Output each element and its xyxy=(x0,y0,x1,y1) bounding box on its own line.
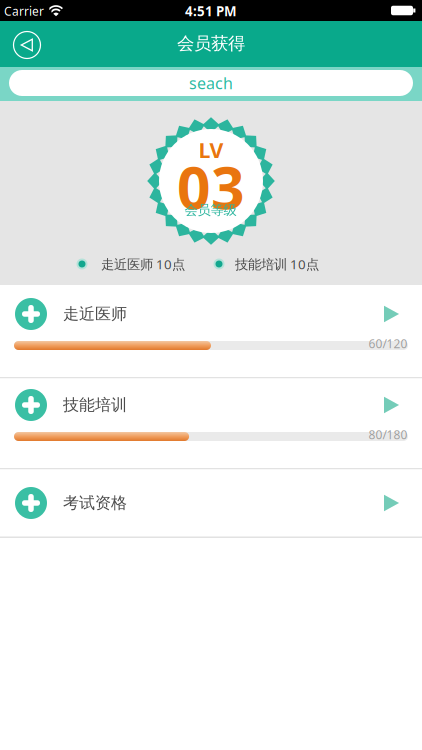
staticText: 03 xyxy=(177,147,245,225)
button[interactable]: 考试资格 xyxy=(0,469,422,536)
staticText: 技能培训 10点 xyxy=(235,255,319,273)
staticText: 考试资格 xyxy=(63,493,127,513)
button[interactable]: seach xyxy=(9,70,413,96)
staticText: 60/120 xyxy=(368,335,407,351)
button[interactable]: Back xyxy=(13,31,40,58)
staticText: 4:51 PM xyxy=(185,2,237,20)
staticText: 走近医师 xyxy=(63,304,127,324)
staticText: Carrier xyxy=(4,3,44,19)
staticText: LV xyxy=(198,136,223,164)
button[interactable]: 技能培训 xyxy=(0,378,422,468)
staticText: 80/180 xyxy=(368,426,407,442)
staticText: 走近医师 10点 xyxy=(101,255,185,273)
staticText: 技能培训 xyxy=(63,395,127,415)
staticText: 会员等级 xyxy=(184,202,236,218)
button[interactable]: 走近医师 xyxy=(0,285,422,377)
staticText: seach xyxy=(189,72,233,94)
staticText: 会员获得 xyxy=(177,33,245,54)
